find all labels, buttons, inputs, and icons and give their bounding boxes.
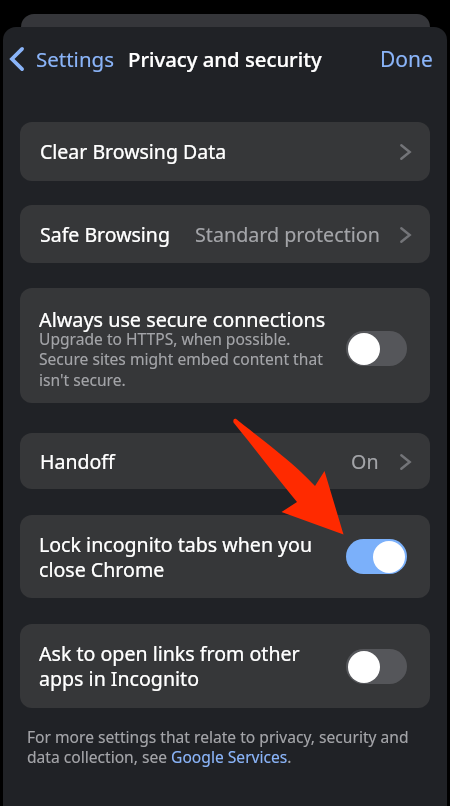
staticText: Upgrade to HTTPS, when possible. Secure … — [39, 328, 323, 391]
staticText: Done — [380, 45, 433, 74]
button[interactable]: Settings — [4, 37, 125, 81]
button[interactable]: Clear Browsing Data — [20, 122, 430, 181]
staticText: Settings — [36, 45, 115, 73]
button[interactable]: Ask to open links from other apps in Inc… — [20, 624, 430, 708]
button[interactable]: Safe Browsing — [20, 205, 430, 263]
staticText: For more settings that relate to privacy… — [27, 726, 409, 767]
staticText: Privacy and security — [128, 45, 322, 73]
button[interactable]: Done — [363, 37, 450, 82]
staticText: On — [351, 448, 379, 475]
button[interactable]: Toggle off — [346, 649, 407, 684]
button[interactable]: Lock incognito tabs when you close Chrom… — [20, 515, 430, 598]
button[interactable]: Toggle off — [346, 331, 407, 366]
button[interactable]: Toggle on — [346, 539, 407, 574]
staticText: Lock incognito tabs when you close Chrom… — [39, 531, 313, 583]
staticText: Safe Browsing — [40, 221, 170, 248]
staticText: Standard protection — [195, 221, 380, 248]
staticText: Always use secure connections — [39, 306, 326, 333]
button[interactable]: Always use secure connections — [20, 288, 430, 403]
staticText: Clear Browsing Data — [40, 138, 227, 165]
button[interactable]: Handoff — [20, 433, 430, 489]
staticText: Handoff — [40, 448, 115, 475]
staticText: Ask to open links from other apps in Inc… — [39, 640, 300, 692]
